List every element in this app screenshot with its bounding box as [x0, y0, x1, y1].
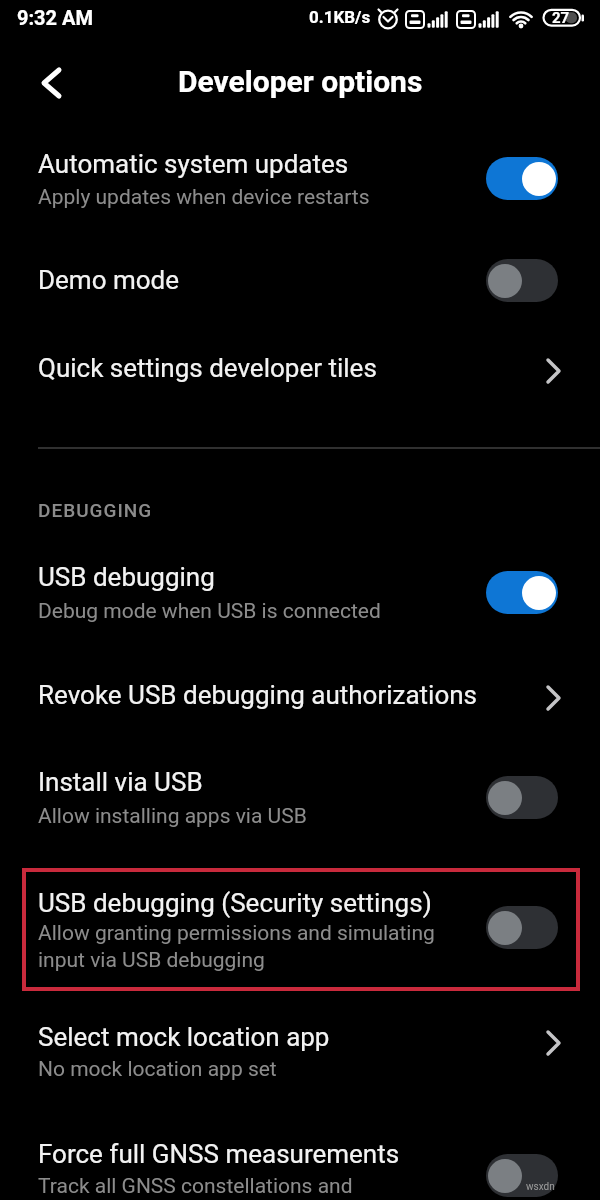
staticText: 9:32 AM: [17, 6, 94, 29]
staticText: USB debugging (Security settings): [38, 888, 432, 918]
staticText: Revoke USB debugging authorizations: [38, 680, 478, 710]
staticText: 27: [552, 9, 570, 27]
staticText: DEBUGGING: [38, 499, 153, 521]
staticText: Track all GNSS constellations and: [38, 1174, 353, 1199]
staticText: Install via USB: [38, 767, 203, 797]
staticText: Demo mode: [38, 265, 180, 295]
staticText: Allow granting permissions and simulatin…: [38, 921, 435, 946]
staticText: No mock location app set: [38, 1057, 277, 1082]
staticText: Force full GNSS measurements: [38, 1139, 400, 1169]
staticText: Quick settings developer tiles: [38, 353, 377, 383]
staticText: wsxdn: [526, 1181, 555, 1193]
staticText: Select mock location app: [38, 1022, 330, 1052]
staticText: Apply updates when device restarts: [38, 185, 370, 210]
staticText: Debug mode when USB is connected: [38, 599, 381, 624]
staticText: 0.1KB/s: [309, 7, 371, 27]
staticText: input via USB debugging: [38, 948, 265, 973]
staticText: Developer options: [178, 64, 423, 99]
staticText: Allow installing apps via USB: [38, 804, 307, 829]
staticText: USB debugging: [38, 562, 215, 592]
staticText: Automatic system updates: [38, 149, 349, 179]
